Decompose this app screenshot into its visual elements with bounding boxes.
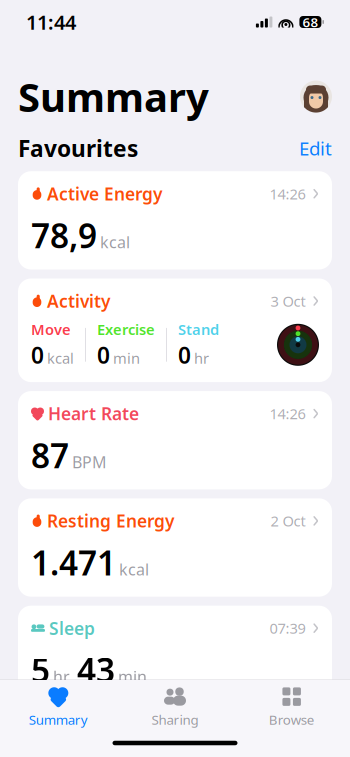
staticText: Move	[31, 319, 71, 339]
button[interactable]: Sharing	[117, 679, 233, 730]
staticText: Summary	[18, 70, 209, 123]
staticText: Edit	[299, 136, 332, 161]
staticText: 07:39	[269, 618, 305, 638]
staticText: Summary	[29, 711, 88, 728]
staticText: Sharing	[151, 711, 198, 728]
button[interactable]: Browse	[233, 679, 350, 730]
staticText: 0	[178, 340, 191, 370]
staticText: 11:44	[26, 9, 76, 35]
staticText: 78,9	[31, 213, 97, 257]
staticText: Active Energy	[47, 182, 162, 205]
button[interactable]: Resting Energy	[18, 498, 332, 597]
staticText: Browse	[269, 711, 315, 728]
button[interactable]: Sleep	[18, 606, 332, 727]
button[interactable]: Profile	[300, 81, 332, 113]
staticText: 87	[31, 433, 69, 477]
button[interactable]: Steps	[18, 736, 332, 757]
button[interactable]: Active Energy	[18, 171, 332, 269]
staticText: 14:26	[269, 184, 305, 203]
staticText: 2 Oct	[270, 511, 305, 531]
staticText: 0	[97, 340, 110, 370]
staticText: hr	[53, 666, 70, 687]
staticText: Favourites	[18, 133, 138, 163]
staticText: min	[113, 348, 140, 368]
staticText: Exercise	[97, 319, 155, 339]
staticText: 14:26	[269, 404, 305, 423]
staticText: Time Asleep	[31, 694, 122, 715]
staticText: 1.471	[31, 540, 116, 585]
button[interactable]: Summary	[0, 679, 117, 730]
staticText: kcal	[100, 231, 130, 253]
staticText: kcal	[47, 348, 74, 368]
staticText: Stand	[178, 319, 219, 339]
staticText: 68	[302, 13, 318, 31]
staticText: BPM	[72, 451, 107, 472]
staticText: Heart Rate	[48, 402, 139, 425]
staticText: 5	[31, 648, 50, 692]
staticText: Resting Energy	[47, 509, 174, 532]
staticText: 3 Oct	[270, 291, 305, 311]
button[interactable]: Edit	[299, 136, 332, 161]
staticText: Activity	[47, 289, 110, 312]
staticText: min	[118, 666, 147, 687]
staticText: 0	[31, 340, 44, 370]
staticText: Sleep	[49, 617, 95, 640]
button[interactable]: Activity	[18, 278, 332, 382]
staticText: 43	[77, 648, 115, 692]
staticText: hr	[194, 348, 209, 368]
staticText: kcal	[119, 559, 149, 580]
button[interactable]: Heart Rate	[18, 391, 332, 489]
